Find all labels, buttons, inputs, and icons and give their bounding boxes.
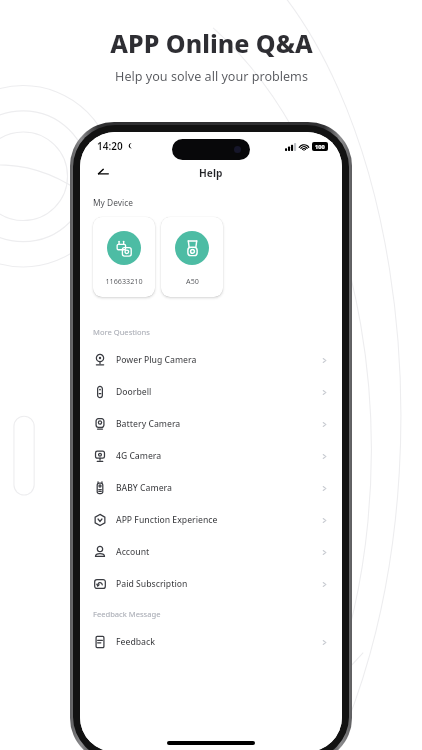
staticText: 4G Camera: [116, 450, 162, 462]
staticText: 116633210: [105, 276, 143, 286]
staticText: Feedback: [116, 636, 155, 648]
staticText: Help: [199, 166, 223, 180]
button[interactable]: Account: [93, 536, 329, 568]
button[interactable]: Paid Subscription: [93, 568, 329, 600]
button[interactable]: Battery Camera: [93, 408, 329, 440]
staticText: More Questions: [93, 327, 150, 337]
button[interactable]: Feedback: [93, 626, 329, 658]
staticText: APP Function Experience: [116, 514, 218, 526]
button[interactable]: Power Plug Camera: [93, 344, 329, 376]
button[interactable]: A50: [161, 217, 223, 297]
button[interactable]: Doorbell: [93, 376, 329, 408]
staticText: Account: [116, 546, 150, 558]
staticText: Help you solve all your problems: [115, 68, 308, 85]
button[interactable]: Back: [93, 163, 113, 183]
staticText: BABY Camera: [116, 482, 172, 494]
staticText: Battery Camera: [116, 418, 181, 430]
staticText: Paid Subscription: [116, 578, 188, 590]
button[interactable]: 116633210: [93, 217, 155, 297]
staticText: Power Plug Camera: [116, 354, 197, 366]
staticText: A50: [186, 276, 199, 286]
staticText: 14:20: [97, 139, 123, 153]
staticText: Feedback Message: [93, 609, 161, 619]
staticText: Doorbell: [116, 386, 152, 398]
staticText: APP Online Q&A: [110, 26, 313, 60]
button[interactable]: BABY Camera: [93, 472, 329, 504]
staticText: 100: [315, 143, 325, 151]
button[interactable]: 4G Camera: [93, 440, 329, 472]
staticText: My Device: [93, 197, 133, 208]
button[interactable]: APP Function Experience: [93, 504, 329, 536]
